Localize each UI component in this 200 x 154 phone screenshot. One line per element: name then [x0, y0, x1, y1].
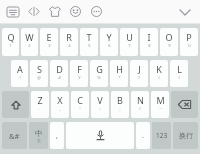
staticText: I: [147, 31, 151, 43]
button[interactable]: D: [50, 60, 68, 87]
button[interactable]: Theme: [44, 1, 65, 22]
button[interactable]: G: [90, 60, 108, 87]
button[interactable]: E: [40, 28, 58, 56]
button[interactable]: N: [131, 91, 149, 118]
button[interactable]: K: [150, 60, 168, 87]
button[interactable]: Y: [100, 28, 118, 56]
staticText: :: [99, 106, 101, 111]
button[interactable]: More: [86, 1, 107, 22]
staticText: 英: [37, 138, 41, 143]
staticText: X: [57, 94, 63, 106]
button[interactable]: Q: [2, 28, 19, 56]
staticText: 3: [48, 43, 51, 48]
button[interactable]: H: [110, 60, 128, 87]
staticText: -: [39, 106, 41, 111]
staticText: V: [97, 94, 103, 106]
button[interactable]: 中: [29, 122, 48, 149]
staticText: N: [137, 94, 144, 106]
staticText: O: [165, 31, 173, 43]
staticText: 1: [9, 43, 12, 48]
staticText: G: [96, 63, 103, 75]
staticText: 2: [28, 43, 31, 48]
button[interactable]: Keyboard settings: [2, 1, 23, 22]
staticText: _: [59, 106, 61, 111]
button[interactable]: .: [136, 122, 150, 149]
button[interactable]: V: [91, 91, 109, 118]
button[interactable]: U: [120, 28, 138, 56]
staticText: E: [46, 31, 52, 43]
staticText: S: [37, 63, 42, 75]
staticText: Y: [106, 31, 112, 43]
staticText: ": [79, 106, 81, 111]
staticText: 换行: [179, 131, 193, 140]
button[interactable]: Backspace: [171, 91, 198, 118]
staticText: B: [117, 94, 123, 106]
staticText: ): [178, 75, 180, 80]
button[interactable]: R: [60, 28, 78, 56]
staticText: 中: [35, 129, 43, 138]
staticText: J: [138, 63, 141, 75]
button[interactable]: O: [160, 28, 178, 56]
staticText: P: [186, 31, 192, 43]
staticText: R: [66, 31, 72, 43]
button[interactable]: 123: [152, 122, 171, 149]
button[interactable]: J: [130, 60, 148, 87]
staticText: 5: [88, 43, 91, 48]
button[interactable]: Shift: [2, 91, 29, 118]
staticText: A: [17, 63, 23, 75]
button[interactable]: F: [70, 60, 88, 87]
staticText: @: [37, 75, 41, 80]
staticText: M: [156, 94, 165, 106]
staticText: W: [25, 31, 34, 43]
staticText: Q: [7, 31, 15, 43]
staticText: K: [156, 63, 162, 75]
staticText: .: [142, 131, 144, 141]
button[interactable]: 换行: [173, 122, 198, 149]
button[interactable]: Z: [31, 91, 49, 118]
staticText: ¥: [78, 75, 81, 80]
button[interactable]: Emoji: [65, 1, 86, 22]
staticText: ;: [119, 106, 121, 111]
staticText: U: [126, 31, 133, 43]
button[interactable]: L: [170, 60, 188, 87]
staticText: &#: [9, 131, 20, 141]
staticText: D: [56, 63, 63, 75]
staticText: C: [77, 94, 83, 106]
button[interactable]: &#: [2, 122, 27, 149]
staticText: H: [116, 63, 123, 75]
staticText: 0: [188, 43, 191, 48]
staticText: 123: [156, 131, 168, 140]
staticText: ~: [159, 106, 162, 111]
staticText: 9: [168, 43, 171, 48]
staticText: 4: [68, 43, 71, 48]
staticText: 7: [128, 43, 131, 48]
staticText: Z: [37, 94, 43, 106]
button[interactable]: P: [180, 28, 198, 56]
staticText: !: [19, 75, 21, 80]
staticText: %: [97, 75, 101, 80]
button[interactable]: T: [80, 28, 98, 56]
button[interactable]: B: [111, 91, 129, 118]
staticText: (: [158, 75, 160, 80]
button[interactable]: M: [151, 91, 169, 118]
button[interactable]: ,: [50, 122, 64, 149]
staticText: *: [118, 75, 121, 80]
staticText: ?: [138, 75, 140, 80]
button[interactable]: I: [140, 28, 158, 56]
staticText: F: [77, 63, 82, 75]
staticText: L: [177, 63, 182, 75]
staticText: T: [86, 31, 92, 43]
button[interactable]: W: [21, 28, 38, 56]
button[interactable]: Text cursor: [23, 1, 44, 22]
button[interactable]: X: [51, 91, 69, 118]
button[interactable]: Space, voice input: [66, 122, 134, 149]
staticText: 6: [108, 43, 111, 48]
button[interactable]: Hide keyboard: [176, 3, 194, 21]
button[interactable]: A: [11, 60, 28, 87]
button[interactable]: C: [71, 91, 89, 118]
button[interactable]: S: [30, 60, 48, 87]
staticText: 8: [148, 43, 151, 48]
staticText: ,: [56, 131, 58, 141]
staticText: #: [58, 75, 61, 80]
staticText: /: [139, 106, 141, 111]
